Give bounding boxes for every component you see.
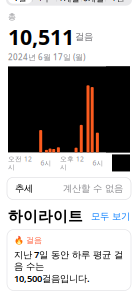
staticText: 10,500걸음입니다. bbox=[14, 272, 90, 285]
button[interactable]: 모두 보기 bbox=[91, 211, 130, 222]
button[interactable]: 1주 bbox=[32, 0, 56, 4]
staticText: 1개월 bbox=[58, 0, 79, 3]
staticText: 걸음 bbox=[26, 235, 42, 245]
button[interactable]: 추세 bbox=[7, 177, 131, 199]
staticText: 모두 보기 bbox=[91, 211, 130, 222]
button[interactable]: 1개월 bbox=[57, 0, 81, 4]
staticText: 1일 bbox=[13, 0, 26, 3]
staticText: 하이라이트 bbox=[8, 207, 83, 225]
staticText: 오후 12시 bbox=[60, 154, 84, 171]
staticText: 추세 bbox=[15, 183, 33, 194]
staticText: 1주 bbox=[38, 0, 51, 3]
staticText: 걸음 bbox=[75, 31, 93, 42]
staticText: 10,511 bbox=[8, 22, 74, 51]
staticText: 1년 bbox=[111, 0, 124, 3]
staticText: 6시 bbox=[40, 158, 51, 167]
staticText: 6개월 bbox=[83, 0, 104, 3]
staticText: 지난 7일 동안 하루 평균 걸음 수는 bbox=[14, 248, 123, 272]
staticText: 계산할 수 없음 bbox=[63, 183, 123, 194]
staticText: 6,000 bbox=[112, 66, 130, 75]
staticText: 오전 12시 bbox=[8, 154, 32, 171]
button[interactable]: 🔥 bbox=[7, 229, 131, 291]
staticText: 6시 bbox=[92, 158, 103, 167]
staticText: 총 bbox=[8, 12, 16, 21]
button[interactable]: 1일 bbox=[8, 0, 32, 4]
button[interactable]: 6개월 bbox=[81, 0, 105, 4]
button[interactable]: 1년 bbox=[106, 0, 130, 4]
staticText: 2024년 6월 17일 (월) bbox=[8, 52, 85, 62]
staticText: 🔥 bbox=[14, 236, 24, 245]
